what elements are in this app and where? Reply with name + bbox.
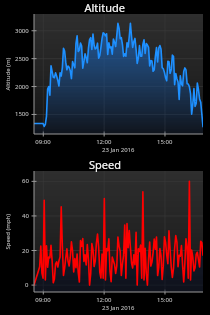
- button[interactable]: Speed chart: [0, 157, 210, 315]
- button[interactable]: Altitude chart: [0, 0, 210, 157]
